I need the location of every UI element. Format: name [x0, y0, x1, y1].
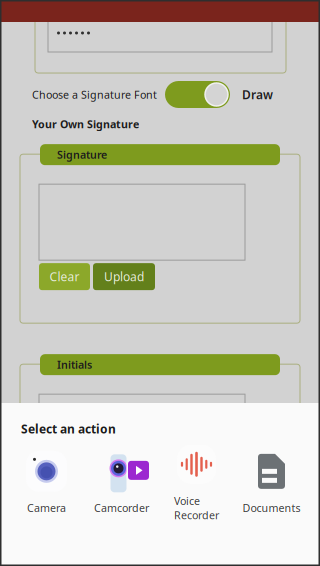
staticText: Upload — [104, 479, 144, 495]
button[interactable]: Documents — [234, 452, 309, 522]
staticText: Select an action — [21, 421, 116, 437]
button[interactable]: Voice Recorder — [159, 452, 234, 522]
button[interactable]: Camera — [9, 452, 84, 522]
button[interactable]: Upload — [93, 473, 155, 500]
button[interactable]: Clear — [39, 263, 90, 290]
button[interactable]: Signature font or draw toggle — [165, 81, 230, 108]
button[interactable]: Upload — [93, 263, 155, 290]
button[interactable]: Clear — [39, 473, 90, 500]
staticText: Clear — [49, 479, 79, 495]
staticText: Draw — [242, 86, 273, 102]
staticText: Signature — [57, 148, 107, 162]
staticText: Choose a Signature Font — [32, 87, 157, 102]
staticText: Camera — [27, 501, 66, 515]
button[interactable]: Camcorder — [84, 452, 159, 522]
staticText: Clear — [49, 269, 79, 285]
staticText: Upload — [104, 269, 144, 285]
staticText: Voice Recorder — [174, 494, 219, 522]
staticText: Camcorder — [94, 501, 149, 515]
staticText: Initials — [57, 358, 92, 372]
staticText: Documents — [242, 501, 300, 515]
staticText: Your Own Signature — [32, 117, 139, 131]
